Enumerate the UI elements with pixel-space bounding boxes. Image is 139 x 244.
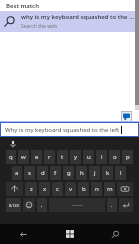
button[interactable]: m: [104, 182, 115, 196]
button[interactable]: h: [76, 166, 87, 180]
button[interactable]: f: [50, 166, 61, 180]
button[interactable]: k: [102, 166, 113, 180]
button[interactable]: j: [89, 166, 100, 180]
button[interactable]: o: [109, 150, 120, 164]
button[interactable]: r: [44, 150, 55, 164]
staticText: o: [113, 153, 117, 161]
button[interactable]: v: [65, 182, 76, 196]
staticText: Best match: [6, 2, 39, 10]
button[interactable]: z: [25, 182, 37, 196]
button[interactable]: a: [12, 166, 22, 180]
button[interactable]: Why is my keyboard squashed to the left: [0, 122, 139, 137]
button[interactable]: d: [37, 166, 48, 180]
staticText: j: [94, 169, 96, 177]
staticText: q: [9, 153, 13, 161]
button[interactable]: Back: [0, 224, 47, 244]
staticText: b: [82, 185, 86, 193]
staticText: y: [74, 153, 78, 161]
button[interactable]: l: [115, 166, 126, 180]
button[interactable]: Enter: [119, 198, 133, 212]
staticText: a: [15, 169, 19, 177]
staticText: .: [111, 202, 113, 209]
staticText: i: [101, 153, 103, 161]
staticText: h: [80, 169, 84, 177]
staticText: Why is my keyboard squashed to the left: [5, 126, 120, 134]
button[interactable]: w: [18, 150, 29, 164]
staticText: e: [35, 153, 39, 161]
staticText: l: [120, 169, 122, 177]
button[interactable]: e: [31, 150, 42, 164]
button[interactable]: Voice input: [8, 139, 18, 149]
staticText: m: [107, 185, 113, 193]
button[interactable]: Shift: [6, 182, 23, 196]
staticText: v: [69, 185, 73, 193]
button[interactable]: Start: [47, 224, 93, 244]
button[interactable]: &123: [6, 198, 21, 212]
staticText: f: [54, 169, 57, 177]
button[interactable]: Search: [93, 224, 139, 244]
staticText: d: [41, 169, 45, 177]
button[interactable]: ,: [37, 198, 47, 212]
staticText: p: [126, 153, 130, 161]
button[interactable]: Space: [49, 198, 105, 212]
staticText: n: [95, 185, 99, 193]
button[interactable]: y: [70, 150, 81, 164]
staticText: c: [56, 185, 59, 193]
button[interactable]: s: [24, 166, 35, 180]
button[interactable]: Emoji: [23, 198, 35, 212]
staticText: x: [43, 185, 47, 193]
staticText: t: [61, 153, 64, 161]
button[interactable]: why is my keyboard squashed to the left?: [0, 11, 139, 32]
staticText: z: [30, 185, 33, 193]
staticText: w: [21, 153, 26, 161]
button[interactable]: Backspace: [117, 182, 133, 196]
staticText: why is my keyboard squashed to the left?: [21, 13, 135, 21]
staticText: s: [28, 169, 31, 177]
button[interactable]: x: [39, 182, 50, 196]
staticText: ,: [41, 202, 43, 209]
button[interactable]: .: [107, 198, 117, 212]
staticText: Search the web: [21, 23, 57, 30]
button[interactable]: p: [122, 150, 133, 164]
button[interactable]: i: [96, 150, 107, 164]
staticText: g: [67, 169, 71, 177]
button[interactable]: g: [63, 166, 74, 180]
staticText: r: [48, 153, 51, 161]
button[interactable]: n: [91, 182, 102, 196]
staticText: k: [106, 169, 110, 177]
button[interactable]: u: [83, 150, 94, 164]
button[interactable]: t: [57, 150, 68, 164]
button[interactable]: q: [6, 150, 16, 164]
staticText: &123: [9, 203, 19, 208]
button[interactable]: c: [52, 182, 63, 196]
staticText: u: [87, 153, 91, 161]
button[interactable]: Send feedback: [121, 111, 132, 122]
button[interactable]: b: [78, 182, 89, 196]
